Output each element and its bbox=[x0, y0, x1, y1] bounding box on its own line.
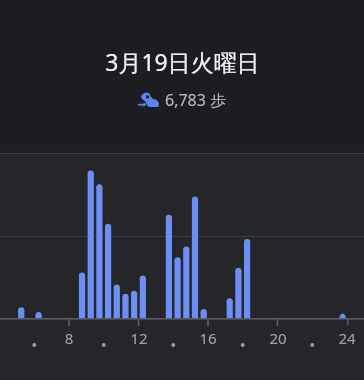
staticText: 8 bbox=[55, 328, 83, 348]
staticText: 16 bbox=[194, 328, 222, 348]
staticText: 6,783 歩 bbox=[165, 89, 227, 111]
staticText: 3月19日火曜日 bbox=[105, 46, 260, 77]
button[interactable]: 8 bbox=[0, 148, 364, 380]
button[interactable]: 3月19日火曜日 bbox=[0, 0, 364, 148]
staticText: 24 bbox=[333, 328, 361, 348]
staticText: 20 bbox=[264, 328, 292, 348]
staticText: 12 bbox=[125, 328, 153, 348]
other: Steps bbox=[138, 90, 160, 110]
